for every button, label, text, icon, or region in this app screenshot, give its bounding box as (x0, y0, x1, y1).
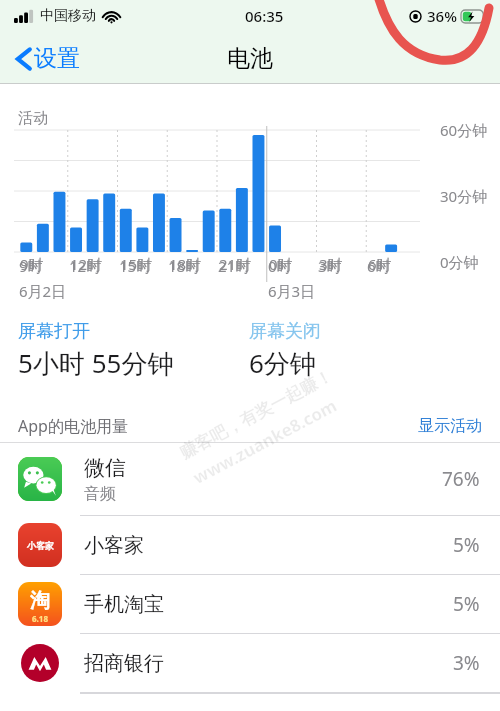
staticText: App的电池用量 (18, 415, 128, 437)
staticText: 06:35 (245, 6, 284, 26)
staticText: 6月3日 (268, 281, 316, 301)
staticText: 淘 (30, 588, 50, 613)
staticText: 活动 (18, 109, 48, 128)
staticText: www.zuanke8.com (189, 394, 341, 489)
staticText: 0分钟 (440, 252, 479, 272)
staticText: 音频 (84, 484, 116, 504)
staticText: 5% (453, 532, 480, 558)
staticText: 12时 (69, 256, 102, 276)
staticText: 招商银行 (84, 651, 164, 676)
staticText: 电池 (227, 44, 273, 73)
staticText: 手机淘宝 (84, 592, 164, 617)
staticText: 18时 (169, 254, 202, 274)
button[interactable]: 小客家 (0, 516, 500, 575)
staticText: 60分钟 (440, 120, 488, 140)
button[interactable]: 设置 (12, 38, 84, 79)
staticText: 小客家 (84, 533, 144, 558)
staticText: 赚客吧，有奖一起赚！ (176, 365, 336, 463)
staticText: 6.18 (32, 613, 48, 624)
staticText: 屏幕关闭 (249, 320, 321, 343)
staticText: 设置 (34, 44, 80, 73)
staticText: 30分钟 (440, 186, 488, 206)
staticText: 屏幕打开 (18, 320, 90, 343)
staticText: 15时 (119, 256, 152, 276)
staticText: 21时 (218, 256, 251, 276)
staticText: 中国移动 (40, 7, 96, 25)
staticText: 5% (453, 591, 480, 617)
staticText: 0时 (269, 254, 293, 274)
staticText: 6分钟 (249, 345, 316, 381)
staticText: 12时 (70, 254, 103, 274)
staticText: 6时 (368, 254, 392, 274)
staticText: 6月2日 (19, 281, 67, 301)
staticText: 3时 (318, 256, 342, 276)
staticText: 9时 (19, 256, 43, 276)
staticText: 9时 (20, 254, 44, 274)
staticText: 5小时 55分钟 (18, 345, 174, 381)
staticText: 显示活动 (418, 416, 482, 436)
staticText: 76% (442, 466, 480, 492)
staticText: 36% (427, 6, 457, 26)
staticText: 6时 (367, 256, 391, 276)
staticText: 3时 (319, 254, 343, 274)
staticText: 0时 (268, 256, 292, 276)
button[interactable]: 招商银行 (0, 634, 500, 693)
staticText: 21时 (219, 254, 252, 274)
staticText: 15时 (120, 254, 153, 274)
button[interactable]: 淘 (0, 575, 500, 634)
button[interactable]: 显示活动 (418, 416, 482, 436)
button[interactable]: 微信 (0, 443, 500, 516)
staticText: 微信 (84, 455, 126, 481)
staticText: 3% (453, 650, 480, 676)
staticText: 小客家 (27, 540, 54, 551)
staticText: 18时 (168, 256, 201, 276)
